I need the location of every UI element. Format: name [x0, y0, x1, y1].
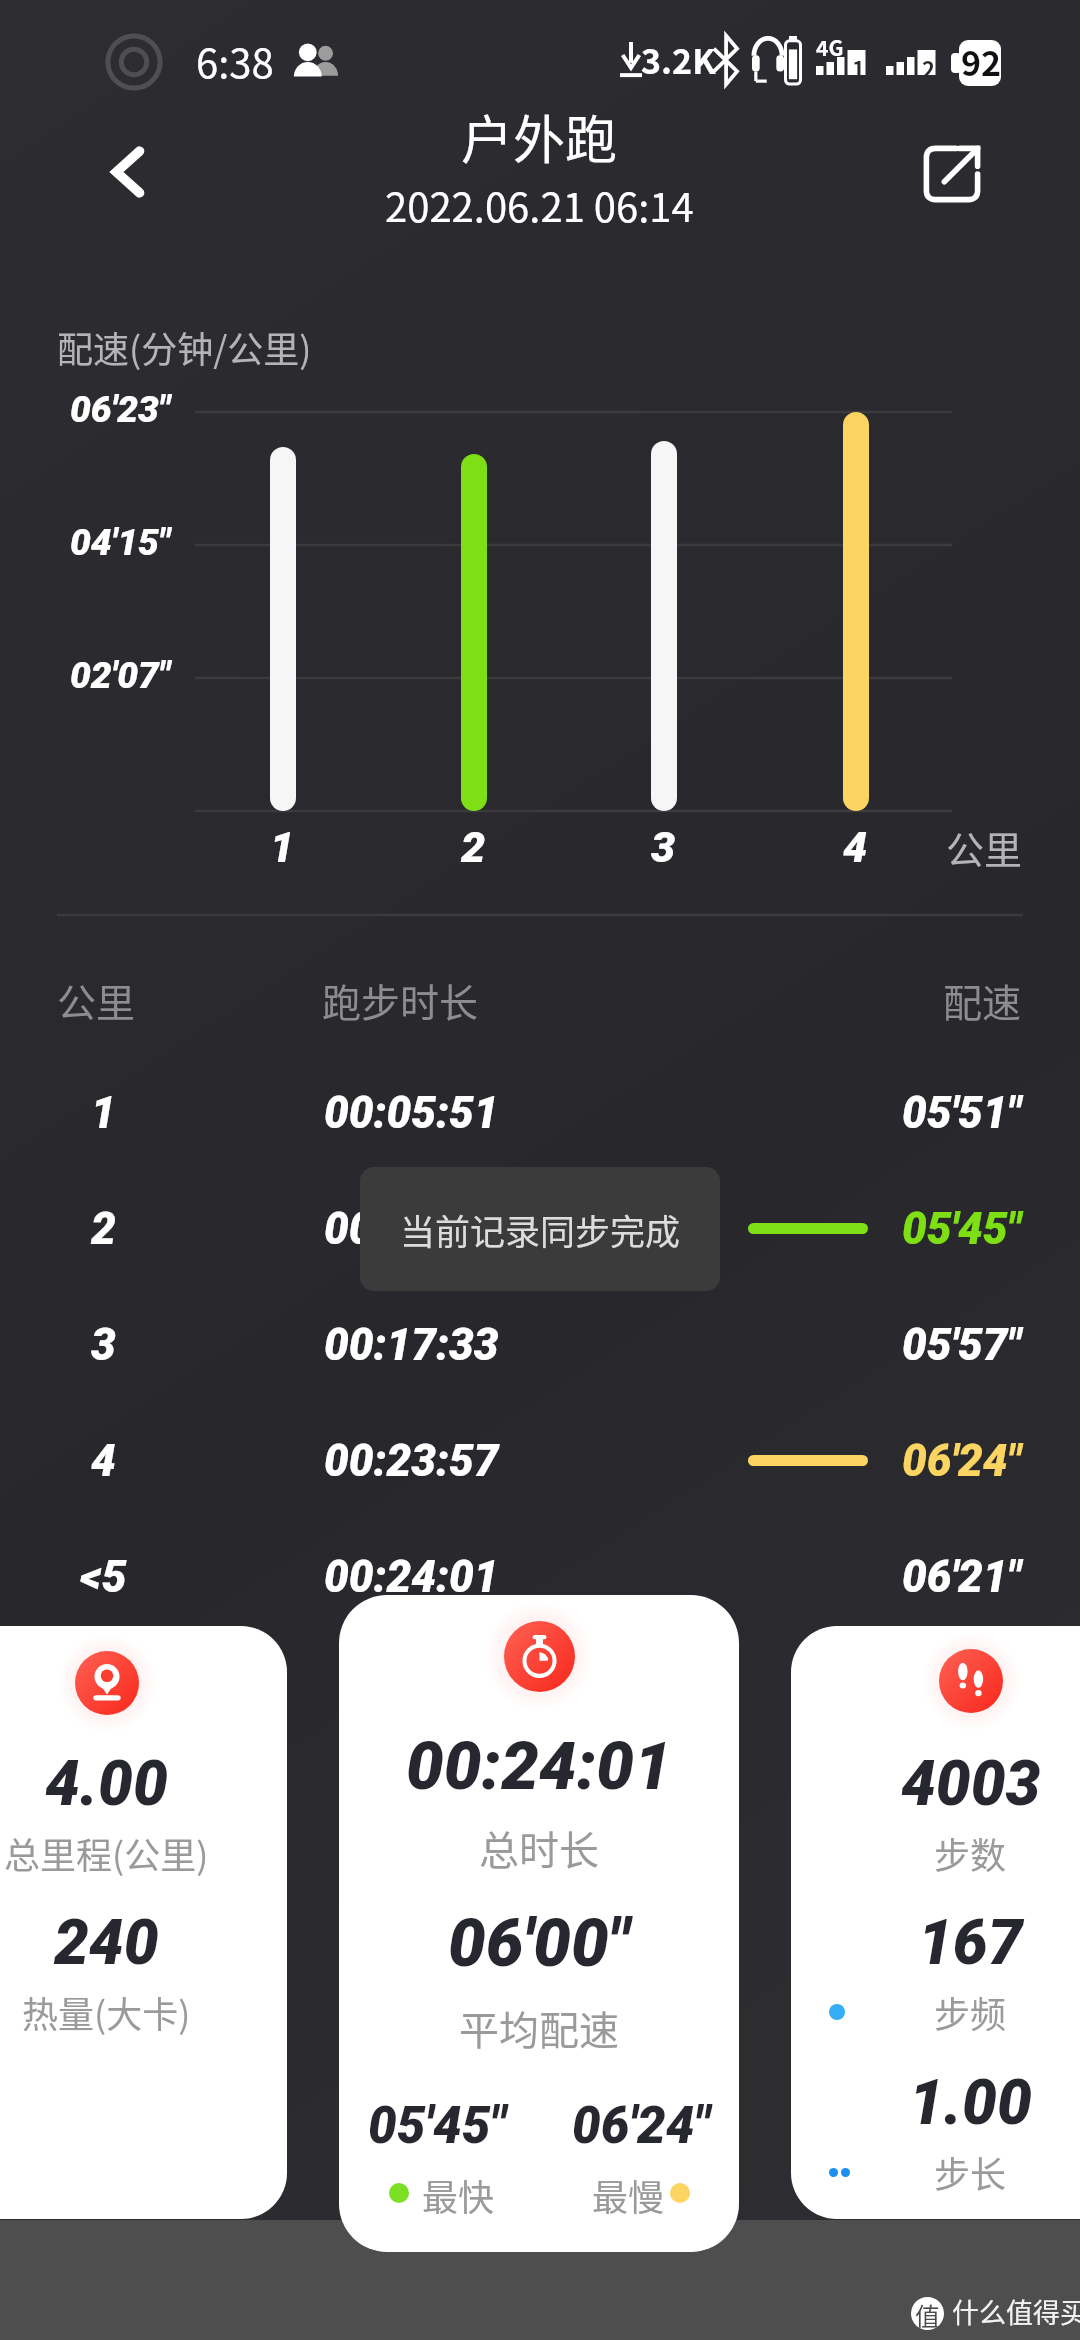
- staticText: 00:17:33: [324, 1319, 499, 1371]
- staticText: 92: [961, 37, 1002, 86]
- staticText: 2022.06.21 06:14: [385, 176, 694, 234]
- staticText: 配速(分钟/公里): [57, 321, 312, 373]
- staticText: 户外跑: [461, 99, 618, 174]
- button[interactable]: [0, 1403, 1080, 1519]
- staticText: 2: [922, 52, 935, 84]
- staticText: 1: [270, 822, 295, 872]
- staticText: 05'45": [902, 1203, 1022, 1255]
- staticText: 06'23": [70, 388, 171, 431]
- staticText: 1.00: [909, 2066, 1032, 2139]
- staticText: 值: [915, 2297, 941, 2330]
- button[interactable]: [0, 1519, 1080, 1635]
- staticText: 00:24:01: [324, 1551, 499, 1603]
- staticText: 4G: [816, 32, 844, 62]
- button[interactable]: [0, 1055, 1080, 1171]
- button[interactable]: [0, 1626, 287, 2219]
- staticText: 步长: [934, 2146, 1007, 2198]
- button[interactable]: [791, 1626, 1080, 2219]
- staticText: 跑步时长: [322, 972, 479, 1028]
- button[interactable]: Back: [76, 120, 180, 224]
- staticText: 04'15": [70, 521, 171, 564]
- staticText: 当前记录同步完成: [400, 1204, 681, 1255]
- staticText: 02'07": [70, 654, 171, 697]
- button[interactable]: [339, 1595, 739, 2252]
- staticText: 3.2K: [641, 35, 716, 84]
- staticText: 240: [54, 1906, 159, 1979]
- staticText: 00:24:01: [406, 1727, 672, 1806]
- staticText: 4003: [901, 1747, 1041, 1820]
- staticText: 总里程(公里): [4, 1827, 209, 1879]
- staticText: 最快: [422, 2169, 495, 2221]
- staticText: 步数: [934, 1827, 1007, 1879]
- staticText: 配速: [943, 972, 1022, 1028]
- button[interactable]: [0, 1287, 1080, 1403]
- staticText: 公里: [946, 820, 1023, 875]
- staticText: 4: [91, 1435, 116, 1487]
- staticText: 4: [843, 822, 868, 872]
- staticText: 步频: [934, 1986, 1007, 2038]
- staticText: 6:38: [196, 32, 274, 90]
- staticText: <5: [80, 1551, 127, 1603]
- staticText: 1: [91, 1087, 116, 1139]
- staticText: 06'24": [572, 2096, 711, 2156]
- staticText: 05'51": [902, 1087, 1022, 1139]
- staticText: 00:23:57: [324, 1435, 499, 1487]
- staticText: 4.00: [45, 1747, 168, 1820]
- staticText: 热量(大卡): [22, 1986, 191, 2038]
- staticText: 1: [852, 52, 865, 84]
- staticText: 05'45": [368, 2096, 507, 2156]
- staticText: 什么值得买: [952, 2292, 1080, 2331]
- staticText: 06'21": [902, 1551, 1022, 1603]
- button[interactable]: Share: [900, 122, 1004, 226]
- staticText: 3: [91, 1319, 116, 1371]
- staticText: 2: [91, 1203, 116, 1255]
- staticText: 05'57": [902, 1319, 1022, 1371]
- staticText: 最慢: [592, 2169, 665, 2221]
- staticText: 3: [651, 822, 676, 872]
- staticText: 00:11:36: [324, 1203, 499, 1255]
- staticText: 00:05:51: [324, 1087, 499, 1139]
- staticText: 2: [461, 822, 486, 872]
- staticText: 平均配速: [459, 1999, 619, 2057]
- staticText: 总时长: [479, 1819, 599, 1877]
- button[interactable]: [0, 1171, 1080, 1287]
- staticText: 06'24": [902, 1435, 1022, 1487]
- staticText: 167: [918, 1906, 1023, 1979]
- staticText: 06'00": [448, 1904, 630, 1983]
- staticText: 公里: [57, 972, 136, 1028]
